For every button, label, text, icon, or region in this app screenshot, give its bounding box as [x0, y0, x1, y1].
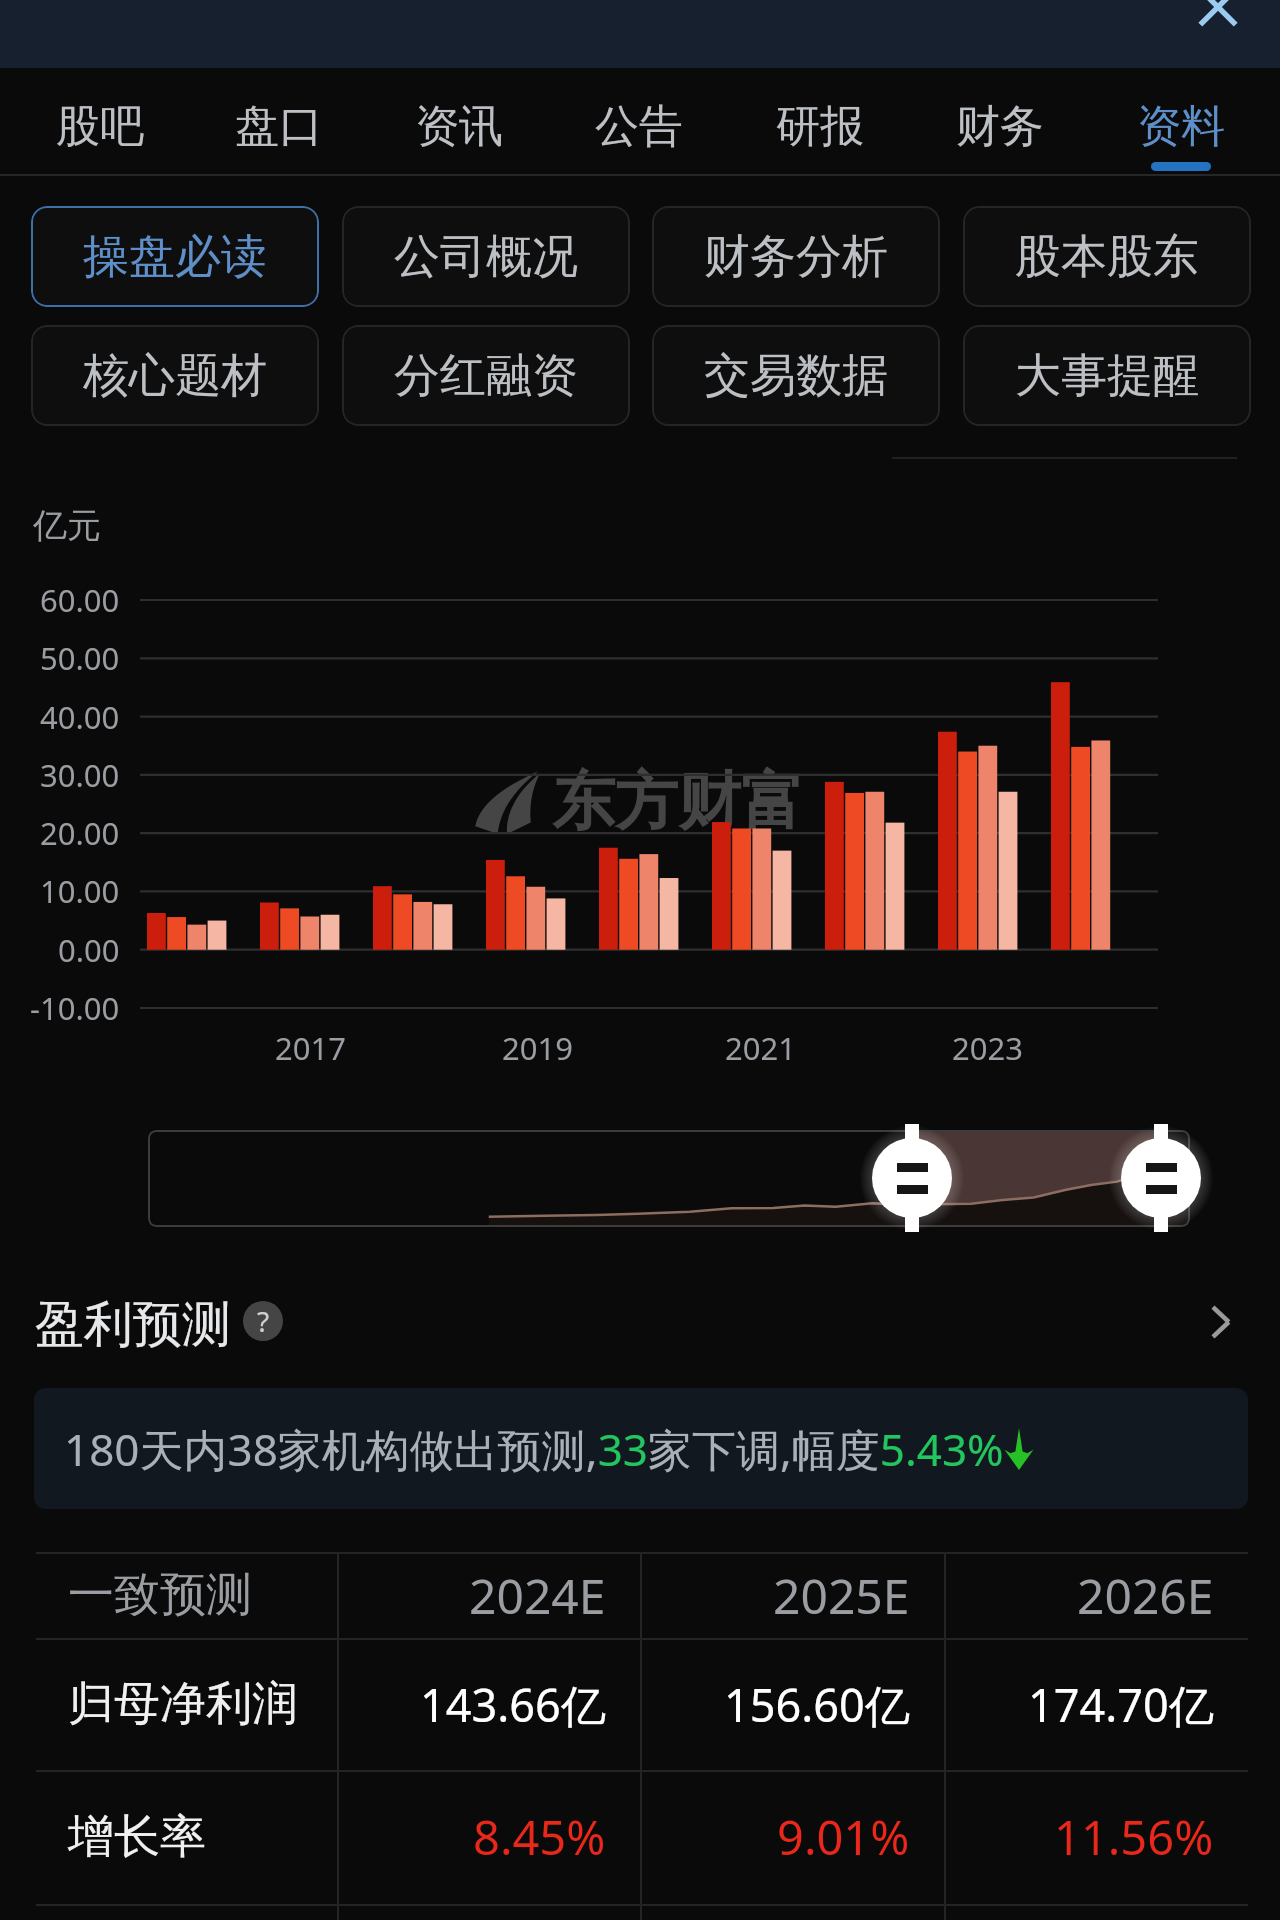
- button[interactable]: 分红融资: [342, 325, 630, 426]
- staticText: 11.56%: [1054, 1805, 1214, 1869]
- staticText: -10.00: [30, 987, 120, 1029]
- staticText: 操盘必读: [83, 228, 267, 286]
- staticText: 东方财富: [552, 762, 804, 841]
- staticText: 2019: [502, 1027, 573, 1069]
- staticText: 公告: [595, 99, 683, 154]
- staticText: 财务: [956, 99, 1044, 154]
- staticText: 归母净利润: [68, 1675, 298, 1733]
- button[interactable]: 财务: [918, 70, 1082, 172]
- staticText: 174.70亿: [1028, 1674, 1214, 1735]
- staticText: 50.00: [40, 637, 120, 679]
- staticText: 盈利预测: [35, 1294, 231, 1350]
- button[interactable]: 公司概况: [342, 206, 630, 307]
- other: More: [1192, 1294, 1248, 1350]
- staticText: 股吧: [56, 99, 144, 154]
- button[interactable]: 交易数据: [652, 325, 940, 426]
- staticText: 增长率: [68, 1808, 206, 1866]
- staticText: 30.00: [40, 754, 120, 796]
- staticText: 8.45%: [473, 1805, 606, 1869]
- button[interactable]: 盈利预测: [0, 1282, 1280, 1364]
- staticText: 核心题材: [83, 347, 267, 405]
- staticText: ?: [257, 1302, 270, 1340]
- staticText: 研报: [776, 99, 864, 154]
- button[interactable]: Range handle: [1121, 1138, 1201, 1218]
- staticText: 财务分析: [704, 228, 888, 286]
- staticText: 一致预测: [68, 1566, 252, 1624]
- button[interactable]: 资讯: [377, 70, 541, 172]
- staticText: 60.00: [40, 579, 120, 621]
- staticText: 分红融资: [394, 347, 578, 405]
- staticText: 10.00: [40, 870, 120, 912]
- staticText: 2017: [275, 1027, 346, 1069]
- button[interactable]: Close: [1192, 0, 1244, 33]
- staticText: 180天内38家机构做出预测,33家下调,幅度5.43%: [64, 1419, 1004, 1479]
- button[interactable]: 股本股东: [963, 206, 1251, 307]
- staticText: 亿元: [33, 504, 101, 547]
- staticText: 资讯: [415, 99, 503, 154]
- button[interactable]: 股吧: [18, 70, 182, 172]
- button[interactable]: 大事提醒: [963, 325, 1251, 426]
- staticText: 2023: [952, 1027, 1023, 1069]
- button[interactable]: Range handle: [872, 1138, 952, 1218]
- staticText: 9.01%: [777, 1805, 910, 1869]
- button[interactable]: 盘口: [197, 70, 361, 172]
- staticText: 143.66亿: [420, 1674, 606, 1735]
- staticText: 0.00: [58, 929, 120, 971]
- staticText: 交易数据: [704, 347, 888, 405]
- staticText: 40.00: [40, 696, 120, 738]
- staticText: 大事提醒: [1015, 347, 1199, 405]
- staticText: 盘口: [235, 99, 323, 154]
- button[interactable]: 操盘必读: [31, 206, 319, 307]
- button[interactable]: 公告: [557, 70, 721, 172]
- staticText: 2021: [725, 1027, 796, 1069]
- staticText: 资料: [1137, 99, 1225, 154]
- button[interactable]: 研报: [738, 70, 902, 172]
- staticText: 156.60亿: [724, 1674, 910, 1735]
- button[interactable]: 财务分析: [652, 206, 940, 307]
- staticText: 公司概况: [394, 228, 578, 286]
- button[interactable]: 核心题材: [31, 325, 319, 426]
- button[interactable]: 资料: [1099, 70, 1263, 172]
- staticText: 2025E: [773, 1563, 910, 1628]
- staticText: 20.00: [40, 812, 120, 854]
- staticText: 股本股东: [1015, 228, 1199, 286]
- staticText: 2026E: [1077, 1563, 1214, 1628]
- staticText: 2024E: [469, 1563, 606, 1628]
